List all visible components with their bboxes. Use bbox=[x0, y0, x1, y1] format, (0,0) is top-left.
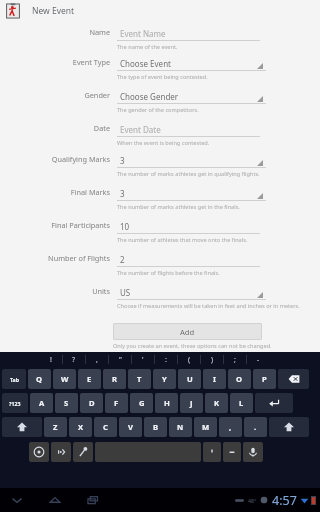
button[interactable]: Units bbox=[0, 284, 320, 317]
button[interactable]: " bbox=[109, 352, 131, 367]
button[interactable]: Backspace bbox=[278, 369, 309, 389]
button[interactable]: T bbox=[128, 369, 151, 389]
staticText: Event Name bbox=[120, 28, 166, 39]
button[interactable]: N bbox=[169, 417, 192, 437]
staticText: The name of the event. bbox=[117, 43, 178, 51]
button[interactable]: Enter bbox=[255, 393, 293, 413]
staticText: 10 bbox=[120, 221, 130, 232]
staticText: ) bbox=[211, 355, 214, 365]
button[interactable]: Smiley bbox=[51, 442, 71, 462]
staticText: Number of Flights bbox=[48, 253, 110, 263]
staticText: O bbox=[236, 374, 243, 384]
button[interactable]: Y bbox=[153, 369, 176, 389]
button[interactable]: G bbox=[130, 393, 153, 413]
staticText: D bbox=[89, 398, 95, 408]
button[interactable]: M bbox=[194, 417, 217, 437]
button[interactable]: Date bbox=[0, 121, 320, 152]
staticText: " bbox=[119, 355, 122, 365]
staticText: F bbox=[114, 398, 119, 408]
button[interactable]: App icon bbox=[5, 3, 21, 19]
button[interactable]: X bbox=[69, 417, 92, 437]
staticText: L bbox=[239, 398, 244, 408]
staticText: Final Participants bbox=[51, 220, 110, 230]
staticText: G bbox=[139, 398, 145, 408]
button[interactable]: Voice input bbox=[243, 442, 263, 462]
button[interactable]: , bbox=[219, 417, 242, 437]
button[interactable]: ?123 bbox=[2, 393, 28, 413]
button[interactable]: Tab bbox=[2, 369, 26, 389]
button[interactable]: F bbox=[105, 393, 128, 413]
button[interactable]: Shift bbox=[2, 417, 42, 437]
staticText: 3 bbox=[120, 188, 125, 199]
button[interactable]: O bbox=[228, 369, 251, 389]
button[interactable]: Shift bbox=[269, 417, 309, 437]
staticText: ( bbox=[188, 355, 191, 365]
button[interactable]: W bbox=[53, 369, 76, 389]
staticText: The type of event being contested. bbox=[117, 73, 208, 81]
staticText: . bbox=[254, 422, 257, 432]
button[interactable]: V bbox=[119, 417, 142, 437]
button[interactable]: Emoji bbox=[29, 442, 49, 462]
button[interactable]: Qualifying Marks bbox=[0, 152, 320, 185]
staticText: Add bbox=[180, 327, 195, 337]
button[interactable]: Event Type bbox=[0, 55, 320, 88]
button[interactable]: ( bbox=[178, 352, 200, 367]
button[interactable]: Home bbox=[44, 489, 66, 511]
button[interactable]: Number of Flights bbox=[0, 251, 320, 284]
staticText: ?123 bbox=[9, 400, 21, 407]
button[interactable]: ' bbox=[132, 352, 154, 367]
button[interactable]: . bbox=[244, 417, 267, 437]
button[interactable]: C bbox=[94, 417, 117, 437]
button[interactable]: : bbox=[155, 352, 177, 367]
button[interactable]: L bbox=[230, 393, 253, 413]
staticText: The number of athletes that move onto th… bbox=[117, 236, 248, 244]
staticText: When the event is being contested. bbox=[117, 139, 210, 147]
button[interactable]: Hide keyboard bbox=[6, 489, 28, 511]
staticText: C bbox=[103, 422, 108, 432]
button[interactable]: B bbox=[144, 417, 167, 437]
staticText: , bbox=[96, 355, 98, 365]
staticText: Event Type bbox=[72, 57, 110, 67]
staticText: Units bbox=[92, 286, 110, 296]
button[interactable]: J bbox=[180, 393, 203, 413]
button[interactable]: Q bbox=[28, 369, 51, 389]
button[interactable]: Gender bbox=[0, 88, 320, 121]
button[interactable]: Apostrophe bbox=[203, 442, 221, 462]
button[interactable]: P bbox=[253, 369, 276, 389]
button[interactable]: D bbox=[80, 393, 103, 413]
button[interactable]: S bbox=[55, 393, 78, 413]
button[interactable]: R bbox=[103, 369, 126, 389]
button[interactable]: ! bbox=[40, 352, 62, 367]
button[interactable]: I bbox=[203, 369, 226, 389]
button[interactable]: Name bbox=[0, 25, 320, 55]
staticText: Q bbox=[36, 374, 43, 384]
staticText: ; bbox=[234, 355, 236, 365]
button[interactable]: Final Marks bbox=[0, 185, 320, 218]
button[interactable]: - bbox=[247, 352, 269, 367]
button[interactable]: K bbox=[205, 393, 228, 413]
staticText: Qualifying Marks bbox=[51, 154, 110, 164]
button[interactable]: E bbox=[78, 369, 101, 389]
staticText: ? bbox=[72, 355, 76, 365]
button[interactable]: , bbox=[86, 352, 108, 367]
button[interactable]: H bbox=[155, 393, 178, 413]
button[interactable]: Dash bbox=[223, 442, 241, 462]
button[interactable]: ) bbox=[201, 352, 223, 367]
staticText: P bbox=[262, 374, 267, 384]
button[interactable]: U bbox=[178, 369, 201, 389]
button[interactable]: Handwriting bbox=[73, 442, 93, 462]
staticText: 3 bbox=[120, 155, 125, 166]
staticText: 48° bbox=[248, 497, 257, 504]
button[interactable]: Z bbox=[44, 417, 67, 437]
button[interactable]: Add bbox=[113, 323, 262, 340]
staticText: V bbox=[128, 422, 133, 432]
button[interactable]: ; bbox=[224, 352, 246, 367]
button[interactable]: Recent apps bbox=[82, 489, 104, 511]
staticText: B bbox=[153, 422, 159, 432]
staticText: A bbox=[39, 398, 45, 408]
button[interactable]: ? bbox=[63, 352, 85, 367]
button[interactable]: A bbox=[30, 393, 53, 413]
button[interactable]: Final Participants bbox=[0, 218, 320, 251]
staticText: Only you create an event, these options … bbox=[113, 342, 272, 350]
